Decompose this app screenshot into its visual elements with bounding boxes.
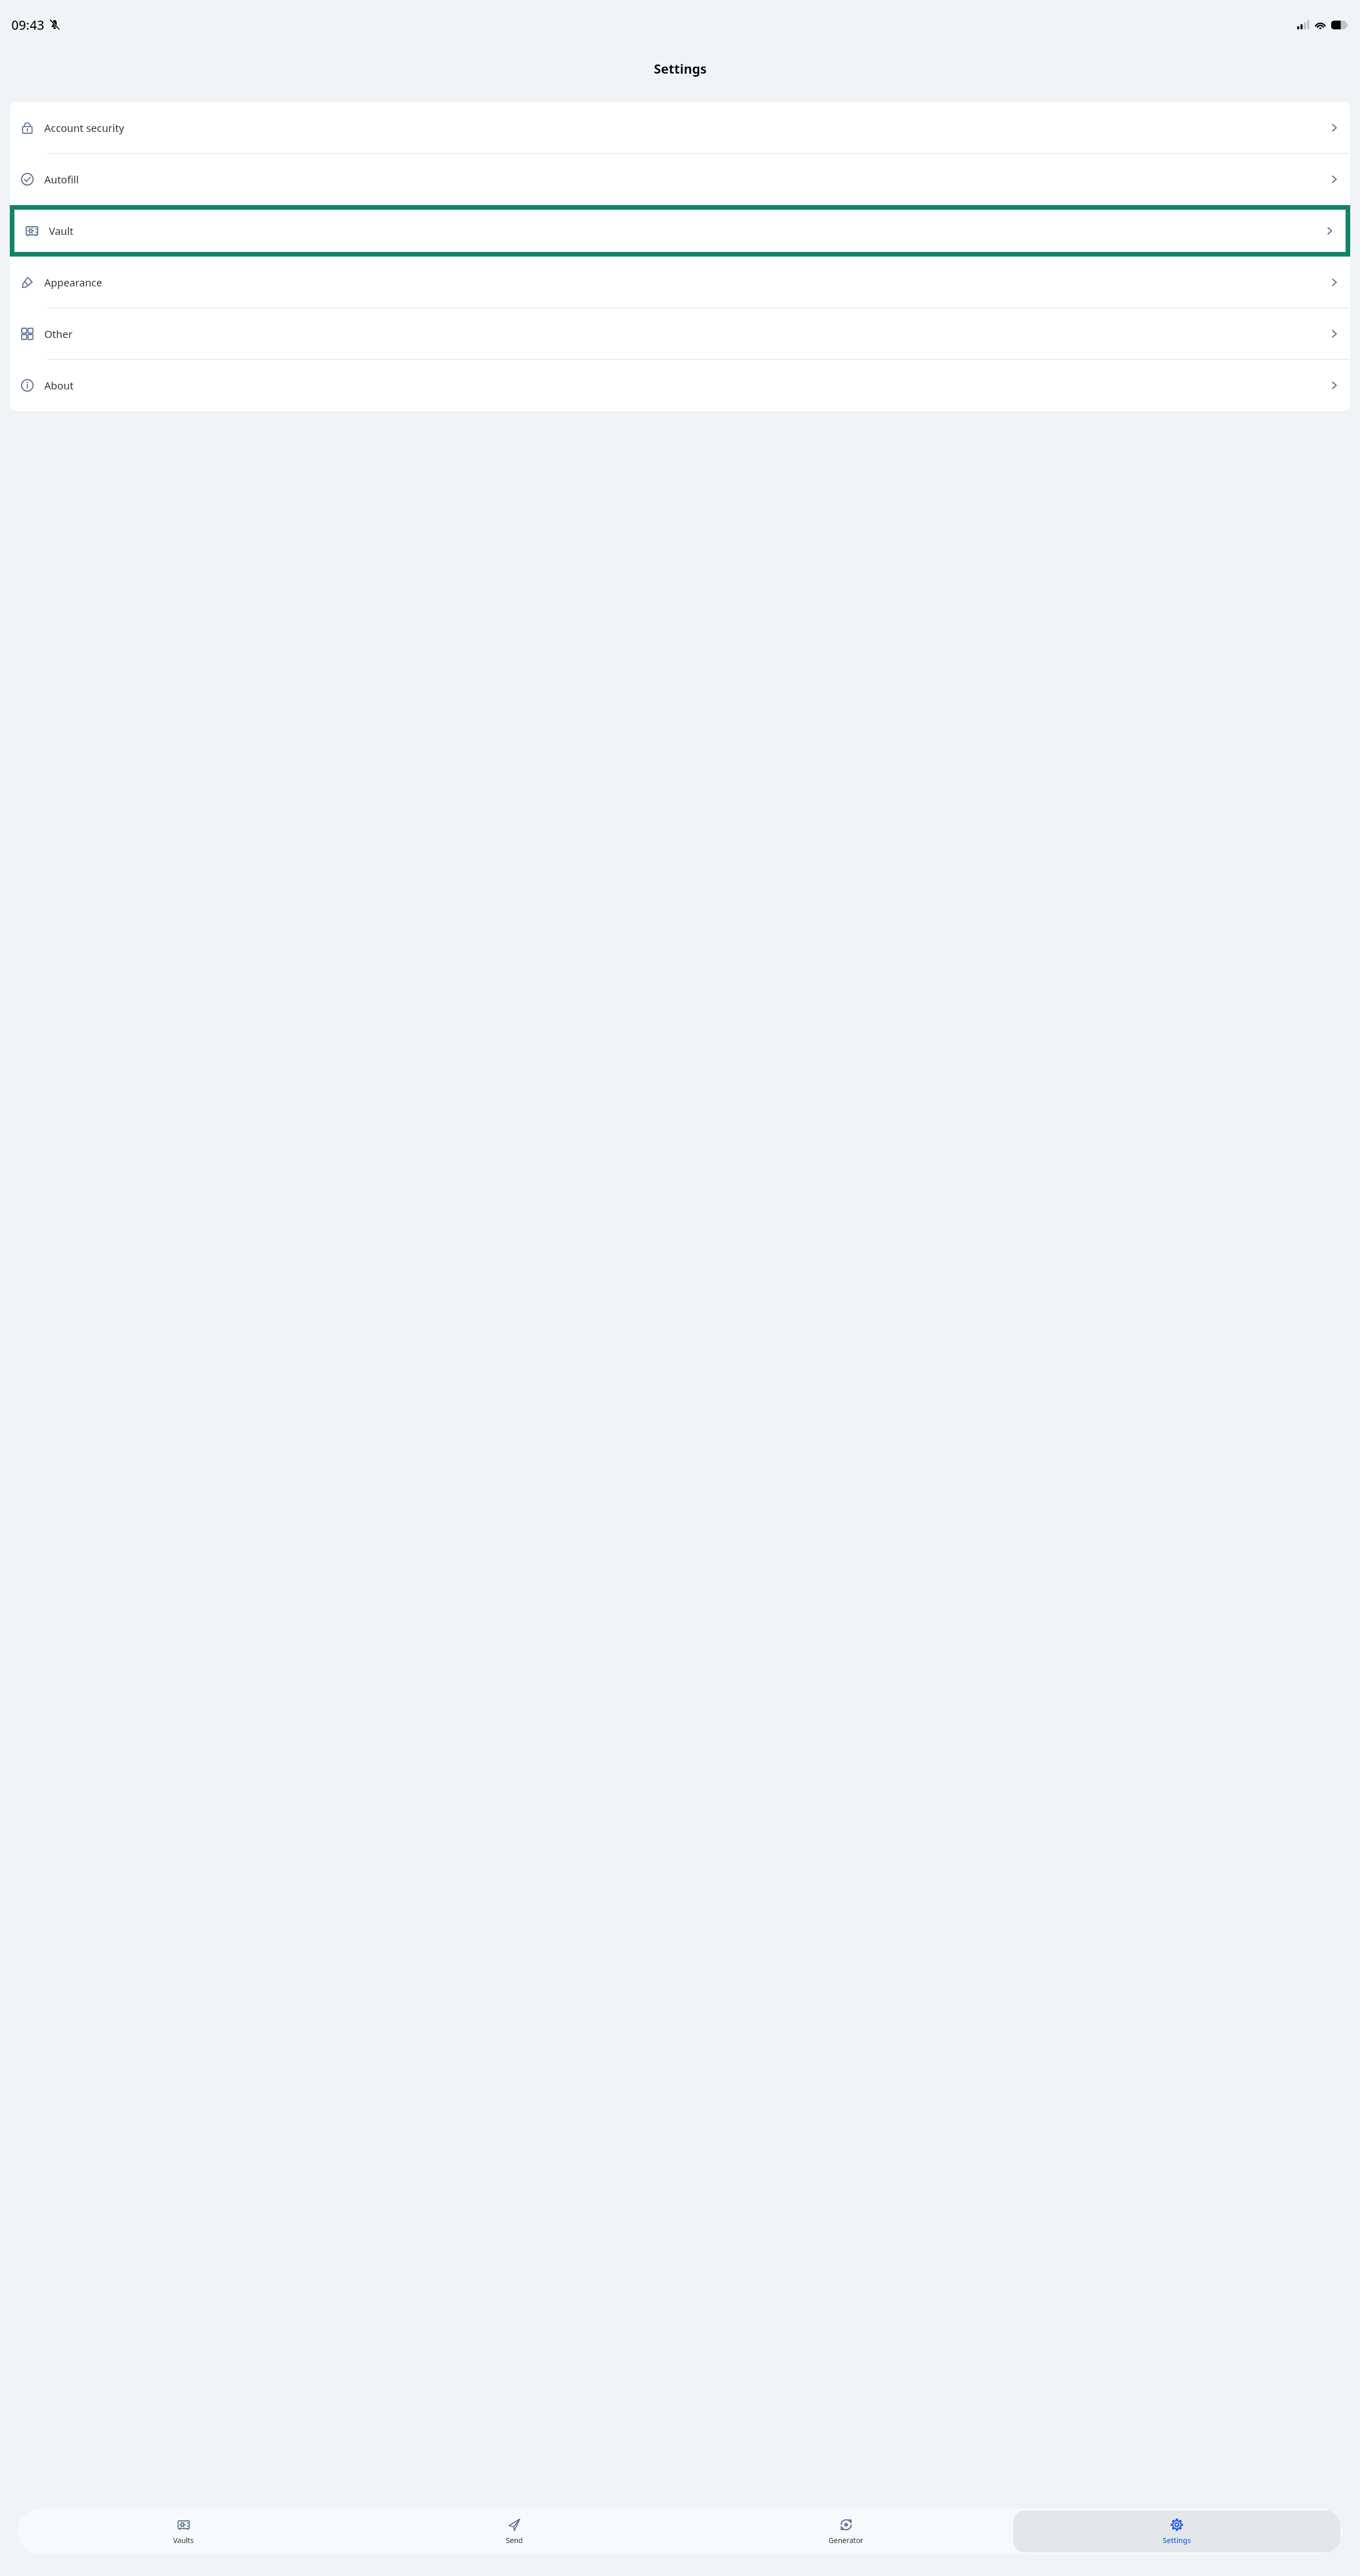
button[interactable]: Send bbox=[351, 2511, 678, 2552]
button[interactable]: Vaults bbox=[20, 2511, 347, 2552]
staticText: Settings bbox=[1163, 2535, 1191, 2545]
button[interactable]: Appearance bbox=[10, 257, 1350, 308]
staticText: Vault bbox=[49, 224, 74, 238]
button[interactable]: Account security bbox=[10, 102, 1350, 154]
staticText: Account security bbox=[44, 121, 124, 135]
staticText: Other bbox=[44, 327, 73, 341]
staticText: Vaults bbox=[173, 2535, 194, 2545]
staticText: Settings bbox=[654, 60, 707, 77]
button[interactable]: Settings bbox=[1013, 2511, 1340, 2552]
staticText: Send bbox=[506, 2535, 523, 2545]
button[interactable]: Vault bbox=[14, 210, 1346, 252]
button[interactable]: About bbox=[10, 360, 1350, 411]
staticText: Autofill bbox=[44, 173, 79, 187]
staticText: Appearance bbox=[44, 276, 103, 290]
staticText: About bbox=[44, 379, 74, 393]
button[interactable]: Autofill bbox=[10, 154, 1350, 205]
button[interactable]: Generator bbox=[682, 2511, 1009, 2552]
staticText: Generator bbox=[828, 2535, 863, 2545]
staticText: 09:43 bbox=[11, 16, 45, 33]
button[interactable]: Other bbox=[10, 308, 1350, 360]
